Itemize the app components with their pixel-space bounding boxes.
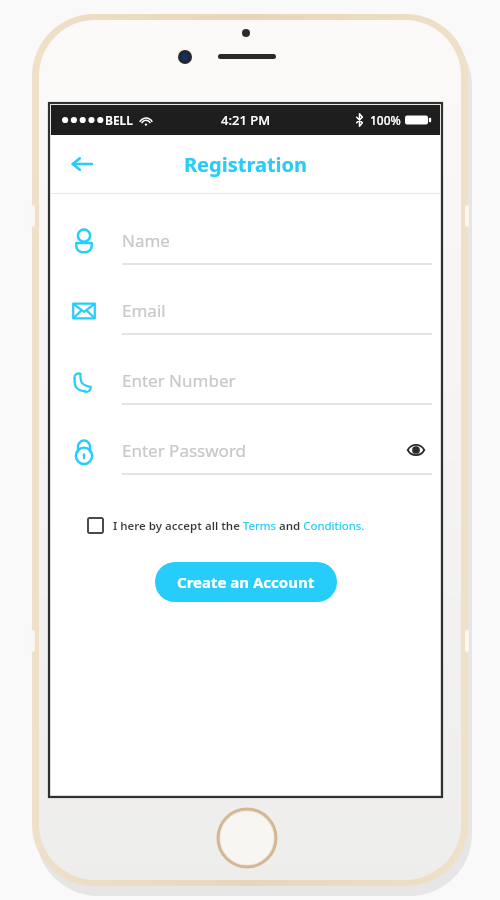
button[interactable]: Name <box>51 211 440 281</box>
staticText: BELL <box>105 112 133 128</box>
staticText: 100% <box>370 112 401 128</box>
staticText: Enter Number <box>122 369 236 392</box>
button[interactable]: Enter Number <box>51 351 440 421</box>
staticText: Name <box>122 229 170 252</box>
button[interactable]: Email <box>51 281 440 351</box>
staticText: Create an Account <box>177 572 315 592</box>
staticText: Enter Password <box>122 439 247 462</box>
button[interactable]: Back <box>65 147 99 181</box>
staticText: Registration <box>184 151 308 178</box>
button[interactable]: Create an Account <box>155 562 337 602</box>
staticText: 4:21 PM <box>221 111 271 129</box>
button[interactable]: Enter Password <box>51 421 440 491</box>
button[interactable]: I here by accept all the Terms and Condi… <box>87 517 404 534</box>
button[interactable]: Show password <box>402 436 430 464</box>
staticText: Email <box>122 299 166 322</box>
staticText: I here by accept all the Terms and Condi… <box>113 518 365 534</box>
